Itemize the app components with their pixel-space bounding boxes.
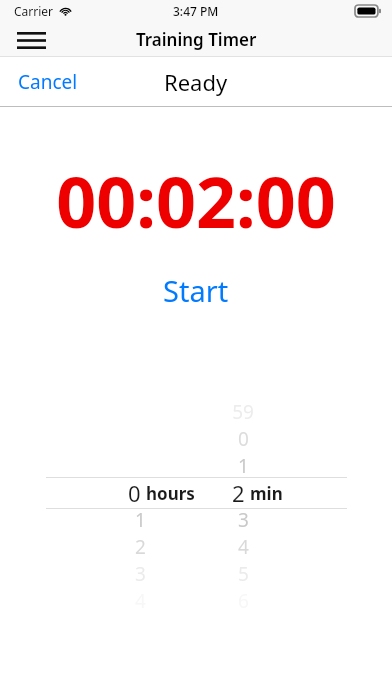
button[interactable]: Start bbox=[141, 265, 251, 311]
staticText: 0 bbox=[238, 426, 249, 452]
button[interactable]: Menu bbox=[10, 24, 52, 56]
staticText: Start bbox=[163, 271, 229, 305]
staticText: Carrier bbox=[14, 3, 54, 19]
staticText: 1 bbox=[135, 507, 146, 533]
staticText: 0 bbox=[128, 478, 141, 508]
staticText: 00:02:00 bbox=[56, 153, 336, 243]
staticText: 3 bbox=[135, 561, 146, 587]
staticText: 5 bbox=[238, 561, 249, 587]
staticText: Training Timer bbox=[136, 28, 257, 51]
staticText: 59 bbox=[232, 399, 254, 425]
staticText: 1 bbox=[238, 453, 249, 479]
staticText: 3 bbox=[238, 507, 249, 533]
staticText: 2 bbox=[232, 478, 245, 508]
button[interactable]: 59 bbox=[0, 0, 392, 696]
staticText: min bbox=[250, 482, 283, 505]
button[interactable]: Cancel bbox=[8, 63, 88, 101]
staticText: Cancel bbox=[18, 69, 78, 95]
staticText: Ready bbox=[164, 67, 228, 97]
staticText: 3:47 PM bbox=[173, 3, 219, 19]
staticText: 2 bbox=[135, 534, 146, 560]
staticText: hours bbox=[146, 482, 195, 505]
staticText: 4 bbox=[238, 534, 249, 560]
